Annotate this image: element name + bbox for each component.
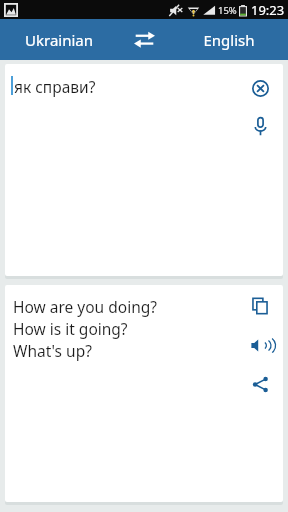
button[interactable]: Clear text: [245, 73, 275, 103]
button[interactable]: Swap languages: [118, 19, 170, 60]
button[interactable]: English: [170, 19, 288, 60]
staticText: How is it going?: [13, 318, 128, 339]
staticText: 15%: [218, 4, 237, 17]
staticText: 19:23: [251, 1, 285, 19]
staticText: What's up?: [13, 340, 92, 361]
button[interactable]: How are you doing?: [13, 296, 157, 361]
button[interactable]: Share: [245, 369, 275, 399]
button[interactable]: Voice input: [245, 111, 275, 141]
staticText: Ukrainian: [25, 30, 93, 50]
button[interactable]: Ukrainian: [0, 19, 118, 60]
button[interactable]: Copy translation: [245, 291, 275, 321]
staticText: How are you doing?: [13, 296, 157, 317]
button[interactable]: як справи?: [11, 76, 283, 97]
other: Screenshot captured: [4, 3, 18, 17]
staticText: як справи?: [14, 76, 96, 97]
button[interactable]: Listen: [245, 330, 275, 360]
staticText: English: [203, 30, 255, 50]
